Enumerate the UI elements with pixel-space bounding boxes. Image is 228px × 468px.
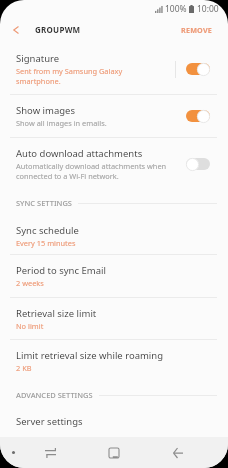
staticText: Every 15 minutes (16, 238, 76, 248)
staticText: ADVANCED SETTINGS (16, 390, 93, 400)
staticText: REMOVE (181, 25, 213, 35)
staticText: No limit (16, 321, 44, 331)
staticText: 100% (165, 3, 187, 15)
button[interactable]: REMOVE (173, 18, 221, 42)
button[interactable]: Navigate up (5, 18, 27, 42)
button[interactable]: Home (102, 440, 126, 465)
staticText: Sync schedule (16, 224, 79, 237)
button[interactable]: Limit retrieval size while roaming (0, 340, 228, 383)
staticText: GROUPWM (35, 24, 81, 35)
button[interactable]: Back (166, 440, 190, 465)
staticText: SYNC SETTINGS (16, 198, 72, 208)
button[interactable]: Show images (0, 95, 228, 137)
staticText: Show images (16, 104, 75, 117)
button[interactable]: Auto download attachments (0, 138, 228, 190)
staticText: Signature (16, 52, 60, 65)
staticText: Sent from my Samsung Galaxy smartphone. (16, 66, 123, 86)
button[interactable]: Sync schedule (0, 215, 228, 254)
staticText: 2 KB (16, 363, 32, 373)
button[interactable]: Switch on (185, 62, 211, 76)
staticText: Limit retrieval size while roaming (16, 349, 164, 362)
button[interactable]: Server settings (0, 406, 228, 436)
staticText: 2 weeks (16, 278, 44, 288)
staticText: Period to sync Email (16, 264, 106, 277)
button[interactable]: Switch on (185, 109, 211, 123)
staticText: Automatically download attachments when … (16, 161, 167, 181)
staticText: 10:00 (197, 3, 219, 15)
staticText: Server settings (16, 415, 83, 428)
button[interactable]: Retrieval size limit (0, 298, 228, 339)
button[interactable]: Period to sync Email (0, 255, 228, 297)
staticText: Retrieval size limit (16, 307, 97, 320)
staticText: Show all images in emails. (16, 118, 107, 128)
button[interactable]: Switch off (185, 157, 211, 171)
button[interactable]: Recent apps (38, 440, 62, 465)
button[interactable]: Signature (0, 44, 228, 94)
staticText: Auto download attachments (16, 147, 143, 160)
